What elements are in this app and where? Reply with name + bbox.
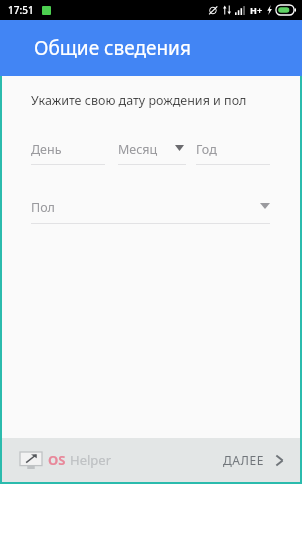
staticText: День	[31, 141, 62, 158]
button[interactable]: Год	[196, 139, 270, 165]
staticText: Укажите свою дату рождения и пол	[31, 92, 247, 109]
button[interactable]: Месяц	[118, 139, 186, 165]
button[interactable]: Пол	[31, 196, 270, 224]
staticText: Год	[196, 141, 217, 158]
staticText: Пол	[31, 199, 55, 216]
button[interactable]: ДАЛЕЕ	[223, 452, 284, 468]
staticText: Общие сведения	[34, 35, 191, 61]
button[interactable]: День	[31, 139, 105, 165]
staticText: ДАЛЕЕ	[223, 452, 265, 468]
staticText: Helper	[70, 451, 112, 469]
staticText: H+	[250, 4, 263, 16]
staticText: 17:51	[8, 3, 34, 17]
staticText: OS	[48, 451, 66, 469]
staticText: Месяц	[118, 141, 158, 158]
